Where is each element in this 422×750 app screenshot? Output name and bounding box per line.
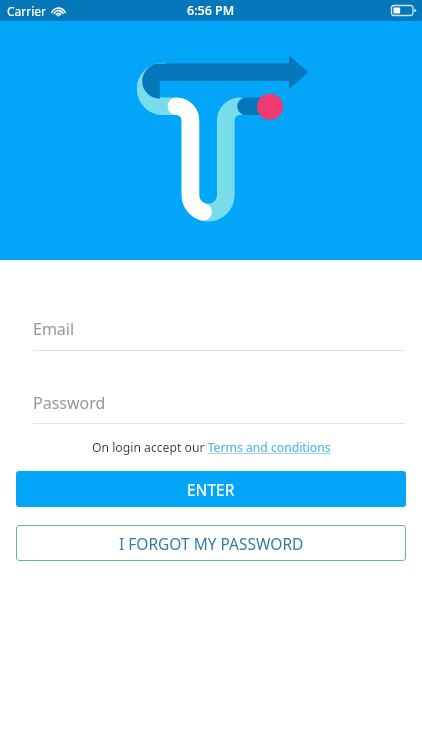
staticText: 6:56 PM [187,2,235,19]
staticText: I FORGOT MY PASSWORD [119,533,304,554]
staticText: Email [33,318,75,340]
button[interactable]: Password [16,382,406,424]
staticText: On login accept our Terms and conditions [92,439,331,456]
staticText: ENTER [187,479,235,500]
staticText: Carrier [7,3,47,19]
other: Wifi [52,6,65,16]
other: Battery [391,5,416,16]
staticText: Password [33,392,106,414]
button[interactable]: Email [16,308,406,350]
button[interactable]: ENTER [16,471,406,507]
button[interactable]: I FORGOT MY PASSWORD [16,525,406,561]
